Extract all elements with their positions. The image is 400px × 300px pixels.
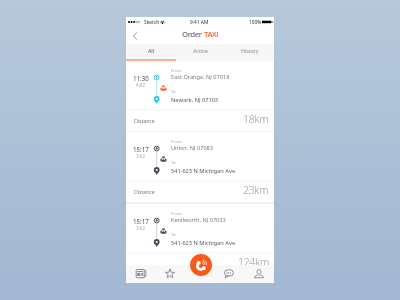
- staticText: Distance: [134, 188, 155, 195]
- staticText: Sketch: [144, 19, 160, 26]
- staticText: 100%: [249, 19, 262, 26]
- staticText: TAXi: [204, 29, 219, 40]
- button[interactable]: 11:30: [126, 61, 274, 131]
- staticText: History: [241, 47, 259, 54]
- button[interactable]: History: [225, 44, 274, 61]
- button[interactable]: All: [126, 44, 176, 61]
- staticText: East Orange, NJ 07018: [171, 73, 230, 81]
- staticText: Newark, NJ 07103: [171, 96, 219, 104]
- staticText: From: [171, 67, 182, 73]
- staticText: Order: [182, 29, 204, 40]
- staticText: From: [171, 138, 182, 144]
- staticText: To: [171, 88, 176, 94]
- staticText: 4:02: [136, 82, 146, 88]
- button[interactable]: Call: [190, 254, 212, 276]
- staticText: Kenilworth, NJ 07033: [171, 216, 226, 224]
- staticText: 23km: [243, 183, 269, 197]
- button[interactable]: News: [126, 265, 155, 283]
- staticText: Union, NJ 07083: [171, 144, 214, 152]
- staticText: 3:02: [136, 153, 146, 159]
- staticText: 11:30: [133, 74, 149, 82]
- button[interactable]: 15:17: [126, 132, 274, 202]
- staticText: 9:41 AM: [190, 19, 209, 26]
- button[interactable]: 15:17: [126, 204, 274, 274]
- staticText: 15:17: [133, 217, 149, 225]
- staticText: To: [171, 231, 176, 237]
- button[interactable]: Profile: [244, 265, 274, 283]
- staticText: From: [171, 210, 182, 216]
- staticText: All: [148, 47, 154, 54]
- staticText: 3:02: [136, 225, 146, 231]
- staticText: 541-623 N Michigan Ave: [171, 167, 236, 175]
- staticText: To: [171, 159, 176, 165]
- staticText: 18km: [243, 112, 269, 126]
- staticText: Active: [193, 47, 208, 54]
- staticText: 541-623 N Michigan Ave: [171, 239, 236, 247]
- button[interactable]: Messages: [214, 265, 244, 283]
- button[interactable]: Active: [176, 44, 225, 61]
- staticText: Distance: [134, 117, 155, 124]
- button[interactable]: Back: [128, 29, 141, 42]
- staticText: 15:17: [133, 145, 149, 153]
- button[interactable]: Favorites: [155, 265, 184, 283]
- staticText: 124km: [238, 255, 269, 269]
